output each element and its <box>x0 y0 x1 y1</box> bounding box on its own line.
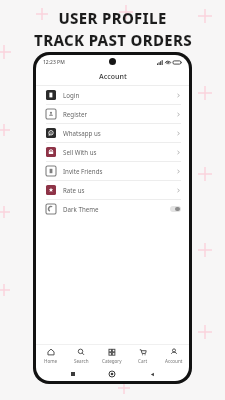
staticText: Dark Theme <box>63 205 99 213</box>
staticText: Register <box>63 110 87 118</box>
staticText: Invite Friends <box>63 167 103 175</box>
button[interactable]: Register <box>36 105 189 123</box>
button[interactable]: Rate us <box>36 181 189 199</box>
button[interactable]: Search <box>66 345 96 367</box>
staticText: TRACK PAST ORDERS <box>34 30 192 50</box>
staticText: USER PROFILE <box>58 8 167 28</box>
button[interactable]: Whatsapp us <box>36 124 189 142</box>
staticText: Rate us <box>63 186 85 194</box>
staticText: Cart <box>138 358 148 364</box>
button[interactable]: Cart <box>127 345 158 367</box>
staticText: Home <box>44 358 58 364</box>
staticText: Account <box>99 72 127 82</box>
button[interactable]: Home <box>36 345 66 367</box>
button[interactable]: Back <box>150 372 155 377</box>
button[interactable]: Invite Friends <box>36 162 189 180</box>
staticText: Sell With us <box>63 148 97 156</box>
button[interactable]: Category <box>96 345 127 367</box>
button[interactable]: Sell With us <box>36 143 189 161</box>
staticText: Account <box>165 358 183 364</box>
button[interactable]: Dark Theme <box>36 200 189 218</box>
staticText: Login <box>63 91 80 99</box>
button[interactable]: Account <box>158 345 189 367</box>
button[interactable]: Home <box>109 371 115 377</box>
button[interactable]: Login <box>36 86 189 104</box>
staticText: 12:23 PM <box>43 59 65 66</box>
button[interactable]: Dark Theme toggle <box>170 206 181 212</box>
staticText: Search <box>74 358 89 364</box>
staticText: Whatsapp us <box>63 129 101 137</box>
staticText: Category <box>102 358 122 364</box>
